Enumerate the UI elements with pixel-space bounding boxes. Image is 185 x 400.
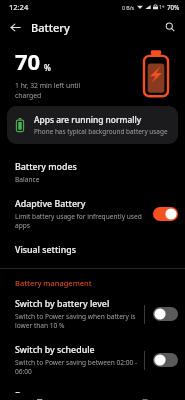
staticText: Battery management [15,278,92,288]
staticText: 1+ [159,4,165,11]
button[interactable]: Visual settings [0,237,185,263]
staticText: Visual settings [15,244,76,256]
staticText: Battery care [15,390,67,393]
staticText: Switch by schedule [15,344,95,356]
staticText: Limit battery usage for infrequently use… [15,212,147,230]
staticText: 70 [15,46,41,76]
staticText: Switch to Power saving between 02:00 - 0… [15,358,138,376]
button[interactable]: On [153,207,178,221]
staticText: Switch to Power saving when battery is l… [15,312,138,330]
button[interactable]: Off [153,307,178,321]
button[interactable]: Switch by battery level [0,291,185,337]
staticText: Balance [15,175,40,184]
staticText: 70% [167,3,180,11]
staticText: Battery [31,20,70,35]
button[interactable]: Adaptive Battery [0,191,185,237]
staticText: % [44,62,51,73]
button[interactable]: Off [153,353,178,367]
staticText: Battery modes [15,161,77,173]
button[interactable]: Navigate up [4,16,26,38]
button[interactable]: Apps are running normally [7,106,178,144]
button[interactable]: Switch by schedule [0,337,185,383]
staticText: 12:24 [9,2,29,12]
button[interactable]: Search [160,17,180,37]
staticText: Switch by battery level [15,298,110,310]
staticText: 1 hr, 32 min left until charged [15,81,81,100]
staticText: Phone has typical background battery usa… [34,127,168,136]
staticText: 0 B/s [122,4,135,11]
button[interactable]: Battery modes [0,154,185,191]
staticText: Apps are running normally [34,114,142,125]
staticText: Adaptive Battery [15,198,86,210]
button[interactable]: Battery care [0,383,185,400]
